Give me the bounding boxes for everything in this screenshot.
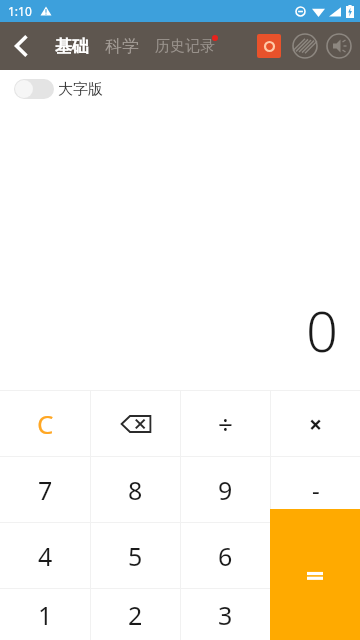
staticText: 2 [128,598,143,632]
staticText: + [308,538,323,573]
button[interactable]: 4 [0,523,90,588]
button[interactable]: 2 [91,589,180,640]
button[interactable]: Mute sound [324,31,354,61]
button[interactable]: × [271,391,360,456]
button[interactable]: ÷ [181,391,270,456]
button[interactable]: 历史记录 [153,37,217,56]
staticText: 历史记录 [155,37,215,56]
button[interactable]: 9 [181,457,270,522]
staticText: 3 [218,598,233,632]
button[interactable]: 7 [0,457,90,522]
button[interactable]: Back [0,22,44,70]
button[interactable]: Record [257,34,281,58]
button[interactable]: 基础 [53,36,91,57]
staticText: × [309,408,323,439]
staticText: 5 [128,539,143,573]
staticText: 基础 [55,36,89,57]
staticText: 科学 [105,36,139,57]
staticText: 6 [218,539,233,573]
staticText: C [37,406,54,441]
staticText: 8 [128,473,143,507]
staticText: ÷ [218,406,233,441]
staticText: 4 [38,539,53,573]
button[interactable]: 1 [0,589,90,640]
button[interactable]: 8 [91,457,180,522]
button[interactable]: C [0,391,90,456]
button[interactable]: Equals [270,509,360,640]
staticText: 大字版 [58,80,103,99]
staticText: 1:10 [8,3,32,19]
button[interactable]: 3 [181,589,270,640]
button[interactable]: 5 [91,523,180,588]
button[interactable]: + [271,523,360,588]
staticText: 7 [38,473,53,507]
button[interactable]: Backspace [91,391,180,456]
staticText: 0 [306,292,338,368]
button[interactable]: - [271,457,360,522]
button[interactable]: 大字版 [14,79,103,99]
staticText: 1 [38,598,53,632]
staticText: 9 [218,473,233,507]
button[interactable]: 6 [181,523,270,588]
button[interactable]: Handwriting [290,31,320,61]
button[interactable]: 科学 [103,36,141,57]
staticText: - [312,473,320,506]
